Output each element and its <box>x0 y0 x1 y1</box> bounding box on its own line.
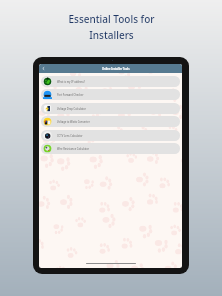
button[interactable]: Port Forward Checker <box>41 89 180 100</box>
staticText: What is my IP address? <box>57 80 85 84</box>
button[interactable]: Voltage Drop Calculator <box>41 103 180 114</box>
staticText: Wire Resistance Calculator <box>57 147 90 151</box>
staticText: Essential Tools for <box>68 12 155 26</box>
staticText: Voltage to Watts Converter <box>57 120 90 124</box>
button[interactable]: Wire Resistance Calculator <box>41 143 180 154</box>
button[interactable]: Back <box>40 65 47 72</box>
staticText: CCTV Lens Calculator <box>57 134 83 138</box>
staticText: Installers <box>89 28 134 42</box>
staticText: Online Installer Tools <box>102 67 130 71</box>
staticText: Port Forward Checker <box>57 93 84 97</box>
button[interactable]: Voltage to Watts Converter <box>41 116 180 127</box>
button[interactable]: CCTV Lens Calculator <box>41 130 180 141</box>
staticText: Voltage Drop Calculator <box>57 107 86 111</box>
button[interactable]: What is my IP address? <box>41 76 180 87</box>
